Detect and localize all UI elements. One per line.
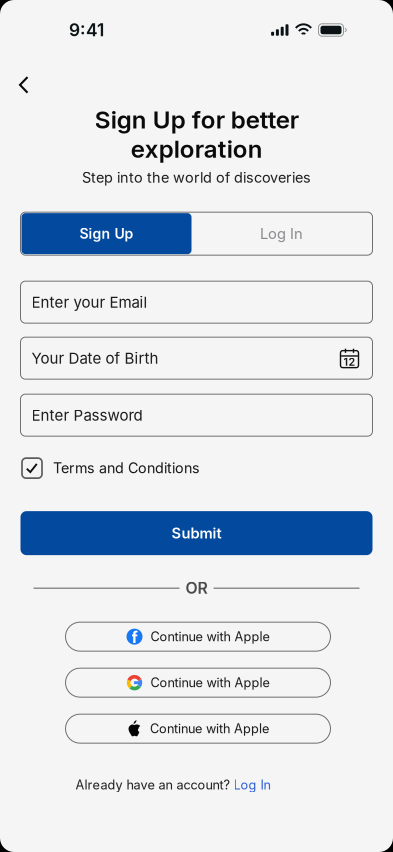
staticText: Log In — [233, 777, 270, 792]
button[interactable]: Log In — [191, 213, 371, 254]
button[interactable]: Terms and Conditions — [22, 458, 200, 478]
button[interactable]: Submit — [20, 511, 372, 555]
staticText: Continue with Apple — [150, 629, 269, 644]
button[interactable]: Enter your Email — [20, 281, 372, 323]
staticText: Enter Password — [31, 406, 142, 424]
button[interactable]: Continue with Apple — [65, 668, 330, 697]
staticText: Sign Up — [79, 225, 133, 242]
button[interactable]: f — [65, 622, 330, 651]
button[interactable]: Already have an account? — [75, 777, 270, 792]
staticText: OR — [185, 579, 207, 598]
staticText: Continue with Apple — [150, 675, 269, 690]
staticText: 9:41 — [69, 19, 104, 40]
staticText: Your Date of Birth — [31, 349, 158, 367]
button[interactable]: Your Date of Birth — [20, 337, 372, 379]
button[interactable]: Enter Password — [20, 394, 372, 436]
staticText: 12 — [343, 355, 355, 368]
button[interactable]: Continue with Apple — [65, 714, 330, 743]
button[interactable]: Sign Up — [21, 213, 191, 254]
staticText: Continue with Apple — [150, 721, 269, 736]
staticText: Enter your Email — [31, 293, 147, 311]
staticText: Terms and Conditions — [53, 459, 200, 477]
staticText: Submit — [171, 524, 221, 542]
staticText: Log In — [260, 225, 303, 242]
staticText: Sign Up for better exploration — [94, 105, 298, 164]
staticText: f — [131, 628, 137, 647]
staticText: Step into the world of discoveries — [82, 169, 311, 186]
staticText: Already have an account? — [75, 777, 229, 792]
button[interactable]: Back — [19, 73, 49, 97]
